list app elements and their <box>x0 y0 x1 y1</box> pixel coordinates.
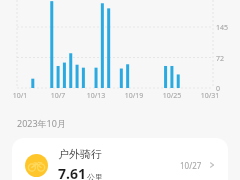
staticText: 户外骑行 <box>58 147 102 161</box>
other: Open details <box>207 160 217 170</box>
staticText: 10/31 <box>199 91 221 101</box>
staticText: 公里 <box>87 172 103 180</box>
staticText: 10/19 <box>123 91 145 101</box>
staticText: 10/13 <box>85 91 107 101</box>
staticText: 10/25 <box>161 91 183 101</box>
staticText: 145 <box>216 23 229 33</box>
staticText: 10/27 <box>180 160 202 171</box>
staticText: 0 <box>216 84 221 94</box>
staticText: 10/1 <box>9 91 31 101</box>
button[interactable]: 户外骑行 <box>12 138 228 180</box>
staticText: 2023年10月 <box>17 117 66 129</box>
staticText: 7.61 <box>58 164 86 180</box>
staticText: 10/7 <box>47 91 69 101</box>
staticText: 72 <box>216 54 225 64</box>
